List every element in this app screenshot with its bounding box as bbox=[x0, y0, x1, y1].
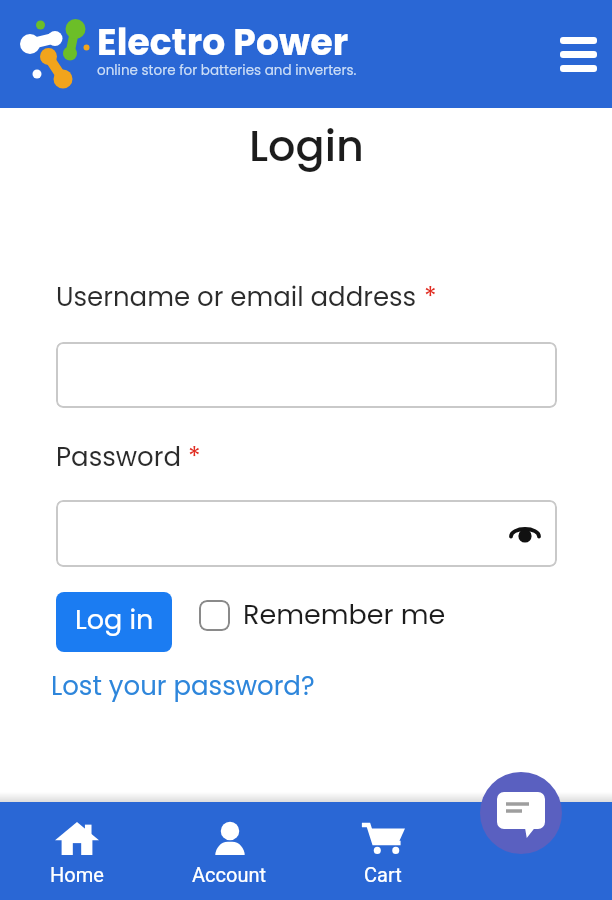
button[interactable]: Cart bbox=[306, 802, 459, 900]
staticText: online store for batteries and inverters… bbox=[97, 61, 357, 80]
button[interactable] bbox=[56, 500, 557, 567]
staticText: Username or email address bbox=[56, 279, 424, 315]
staticText: Log in bbox=[75, 601, 154, 639]
button[interactable] bbox=[560, 37, 597, 72]
button[interactable]: Remember me bbox=[199, 596, 446, 634]
staticText: * bbox=[424, 279, 437, 315]
staticText: Account bbox=[192, 863, 267, 886]
staticText: Login bbox=[249, 116, 364, 176]
staticText: Password bbox=[56, 439, 188, 475]
button[interactable]: Lost your password? bbox=[51, 668, 315, 704]
button[interactable] bbox=[56, 342, 557, 408]
button[interactable]: Home bbox=[0, 802, 153, 900]
staticText: Remember me bbox=[243, 596, 446, 634]
staticText: Cart bbox=[364, 863, 402, 886]
button[interactable] bbox=[480, 772, 562, 854]
staticText: Electro Power bbox=[97, 17, 349, 67]
staticText: * bbox=[188, 439, 201, 475]
staticText: Home bbox=[50, 863, 104, 886]
button[interactable]: Log in bbox=[56, 592, 172, 652]
button[interactable]: Account bbox=[153, 802, 306, 900]
